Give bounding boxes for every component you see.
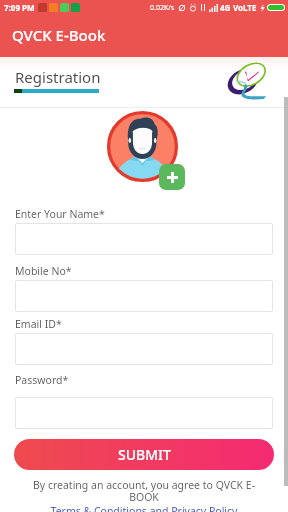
button[interactable]: Add photo <box>159 164 185 190</box>
button[interactable]: QVCK E-Book <box>0 15 288 57</box>
staticText: SUBMIT <box>118 445 171 464</box>
staticText: Mobile No* <box>15 264 72 278</box>
staticText: Email ID* <box>15 317 62 331</box>
button[interactable] <box>15 397 273 429</box>
staticText: 4G <box>220 2 231 13</box>
button[interactable]: SUBMIT <box>14 439 274 470</box>
staticText: Enter Your Name* <box>15 207 105 221</box>
button[interactable] <box>15 223 273 255</box>
staticText: QVCK E-Book <box>12 25 106 45</box>
staticText: By creating an account, you agree to QVC… <box>24 478 264 504</box>
button[interactable]: QVCK logo <box>229 63 267 100</box>
staticText: 7:09 PM <box>4 2 35 13</box>
button[interactable] <box>15 333 273 365</box>
staticText: VoLTE <box>233 2 257 13</box>
staticText: 0.02K/s <box>150 3 175 13</box>
staticText: Password* <box>15 373 69 387</box>
button[interactable]: Profile picture <box>107 111 178 182</box>
button[interactable]: Terms & Conditions and Privacy Policy <box>24 504 264 512</box>
button[interactable]: Registration <box>14 67 100 95</box>
staticText: Registration <box>15 67 101 87</box>
button[interactable] <box>15 280 273 312</box>
